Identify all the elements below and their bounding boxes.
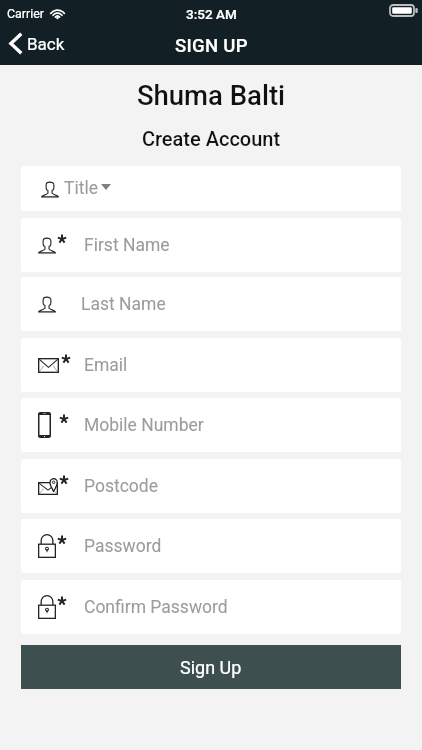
staticText: Carrier xyxy=(7,6,44,21)
staticText: Email xyxy=(84,355,128,376)
staticText: Sign Up xyxy=(180,657,242,678)
staticText: 3:52 AM xyxy=(186,6,237,22)
button[interactable]: Back xyxy=(0,31,77,62)
staticText: Mobile Number xyxy=(84,415,204,436)
staticText: Confirm Password xyxy=(84,597,228,618)
button[interactable]: Confirm Password xyxy=(21,580,401,634)
button[interactable]: Password xyxy=(21,519,401,573)
button[interactable]: Mobile Number xyxy=(21,398,401,452)
staticText: Shuma Balti xyxy=(0,79,422,111)
other: Back xyxy=(9,32,23,55)
staticText: Last Name xyxy=(81,294,166,315)
staticText: Title xyxy=(64,178,98,199)
button[interactable]: Postcode xyxy=(21,459,401,513)
button[interactable]: Email xyxy=(21,338,401,392)
staticText: Postcode xyxy=(84,476,158,497)
staticText: Create Account xyxy=(0,127,422,150)
button[interactable]: Sign Up xyxy=(21,645,401,689)
staticText: Password xyxy=(84,536,162,557)
staticText: Back xyxy=(27,34,65,54)
staticText: First Name xyxy=(84,235,170,256)
staticText: SIGN UP xyxy=(175,35,248,57)
button[interactable]: First Name xyxy=(21,218,401,272)
button[interactable]: Last Name xyxy=(21,277,401,331)
button[interactable]: Title xyxy=(21,166,401,211)
